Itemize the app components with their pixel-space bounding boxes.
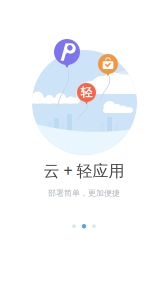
staticText: 云 + 轻应用 <box>43 160 124 181</box>
staticText: 部署简单，更加便捷 <box>48 188 120 198</box>
staticText: 轻 <box>80 85 92 100</box>
